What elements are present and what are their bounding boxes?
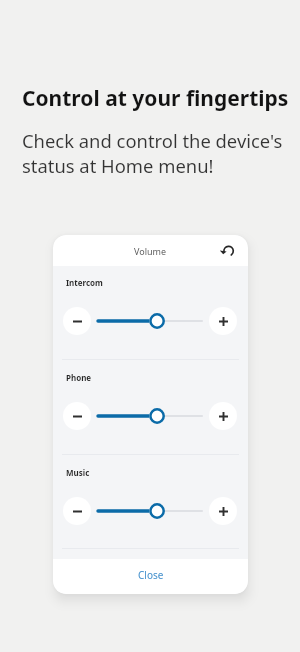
button[interactable]: Increase bbox=[209, 497, 237, 525]
button[interactable]: Decrease bbox=[63, 307, 91, 335]
button[interactable]: Reset volume bbox=[216, 239, 240, 263]
button[interactable]: Decrease bbox=[63, 497, 91, 525]
staticText: Close bbox=[138, 568, 164, 582]
staticText: Intercom bbox=[66, 277, 103, 288]
staticText: Control at your fingertips bbox=[22, 84, 289, 113]
staticText: Music bbox=[66, 467, 90, 478]
staticText: Check and control the device's status at… bbox=[22, 128, 283, 178]
staticText: Volume bbox=[134, 245, 167, 257]
staticText: Phone bbox=[66, 372, 92, 383]
button[interactable]: Increase bbox=[209, 307, 237, 335]
button[interactable]: Close bbox=[53, 559, 248, 594]
button[interactable]: Decrease bbox=[63, 402, 91, 430]
button[interactable]: Increase bbox=[209, 402, 237, 430]
